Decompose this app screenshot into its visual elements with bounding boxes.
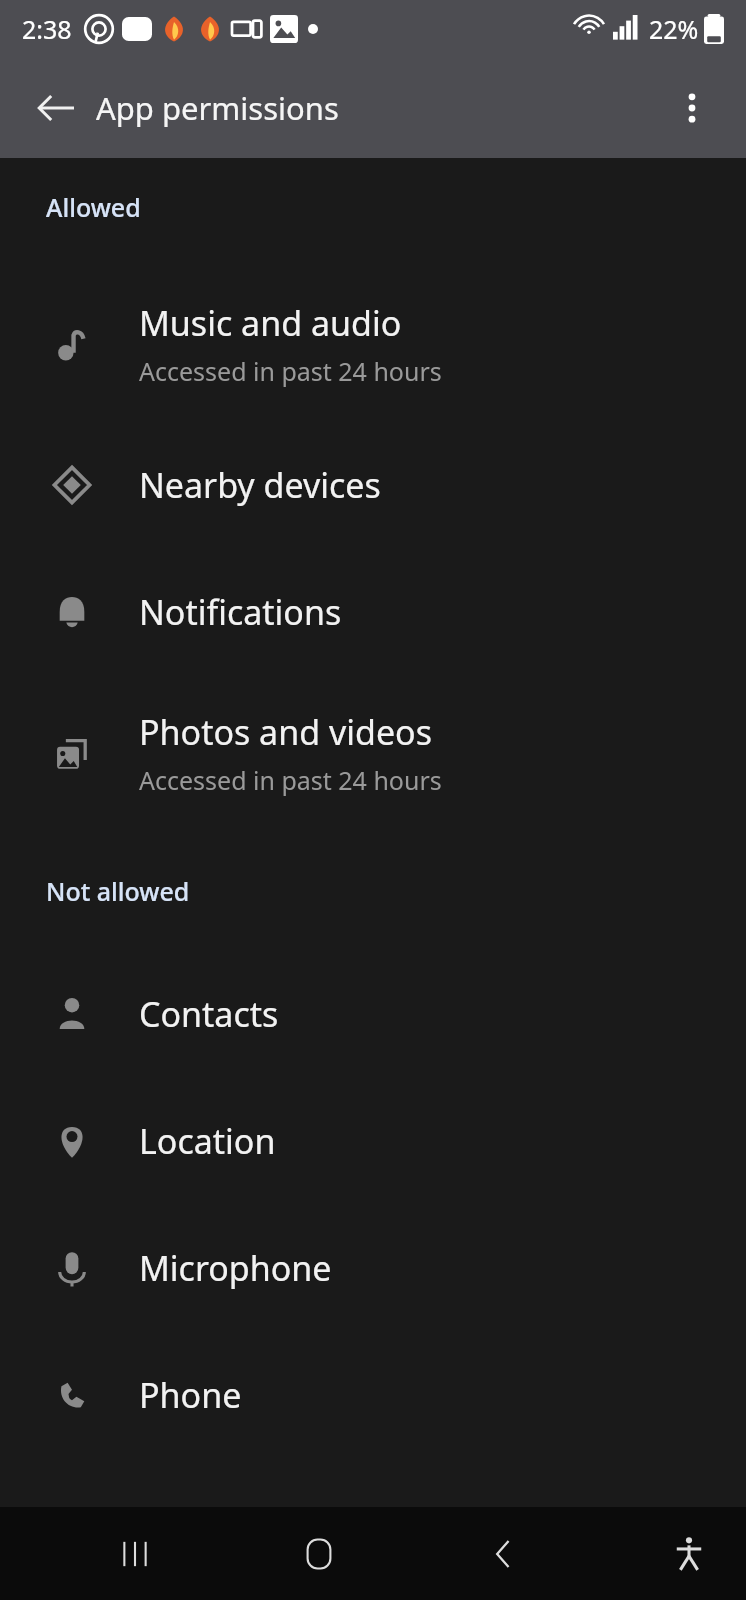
button[interactable]: Location bbox=[0, 1077, 746, 1204]
button[interactable]: Notifications bbox=[0, 548, 746, 675]
staticText: Location bbox=[139, 1118, 276, 1164]
button[interactable]: More options bbox=[652, 68, 732, 148]
button[interactable]: Microphone bbox=[0, 1204, 746, 1331]
button[interactable]: Music and audio bbox=[0, 266, 746, 421]
staticText: 22% bbox=[649, 12, 699, 46]
button[interactable]: Contacts bbox=[0, 950, 746, 1077]
staticText: App permissions bbox=[96, 87, 339, 129]
button[interactable]: Phone bbox=[0, 1331, 746, 1458]
button[interactable]: Home bbox=[274, 1509, 364, 1599]
button[interactable]: Recents bbox=[90, 1509, 180, 1599]
staticText: Allowed bbox=[46, 190, 141, 224]
staticText: Nearby devices bbox=[139, 462, 381, 508]
button[interactable]: Photos and videos bbox=[0, 675, 746, 830]
button[interactable]: Nearby devices bbox=[0, 421, 746, 548]
staticText: Music and audio bbox=[139, 300, 402, 346]
staticText: Contacts bbox=[139, 991, 279, 1037]
staticText: Microphone bbox=[139, 1245, 332, 1291]
staticText: Not allowed bbox=[46, 874, 190, 908]
staticText: Accessed in past 24 hours bbox=[139, 354, 442, 388]
button[interactable]: Back bbox=[20, 72, 92, 144]
button[interactable]: Accessibility bbox=[644, 1509, 734, 1599]
staticText: Notifications bbox=[139, 589, 342, 635]
staticText: 2:38 bbox=[22, 12, 72, 46]
staticText: Phone bbox=[139, 1372, 242, 1418]
staticText: Photos and videos bbox=[139, 709, 432, 755]
button[interactable]: Back bbox=[459, 1509, 549, 1599]
staticText: Accessed in past 24 hours bbox=[139, 763, 442, 797]
